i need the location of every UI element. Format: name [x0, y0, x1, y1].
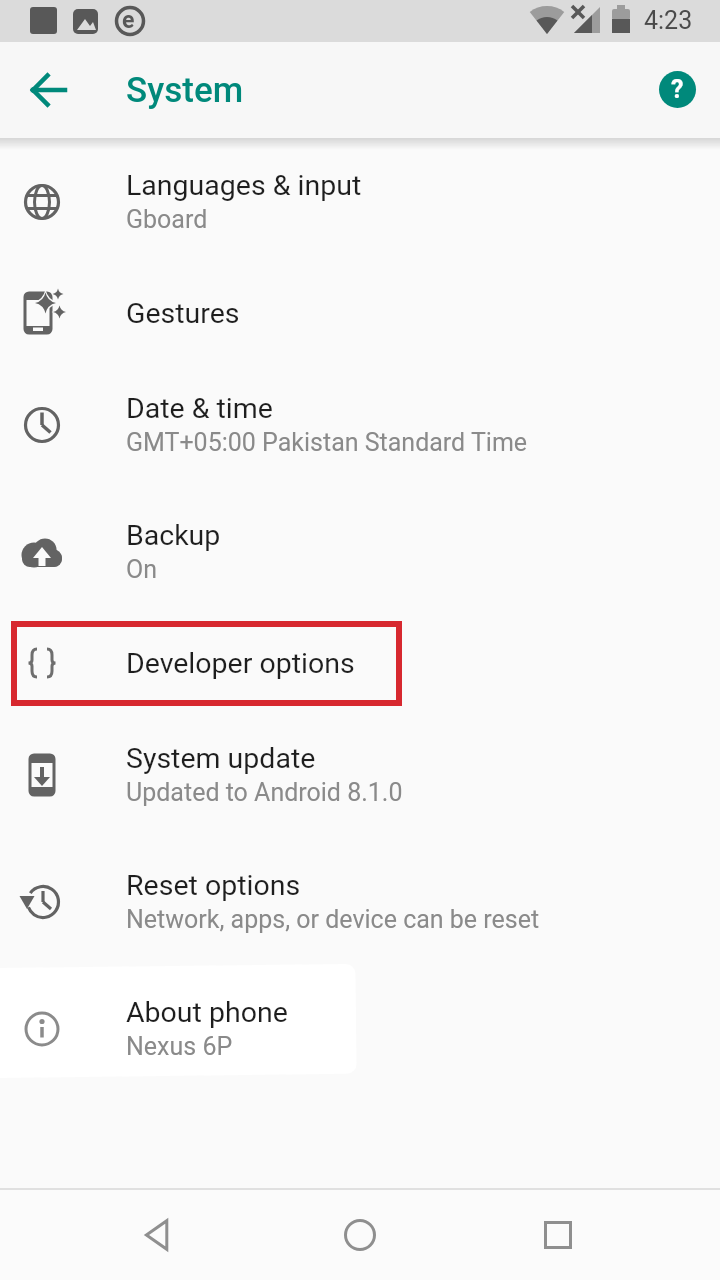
- staticText: Gestures: [126, 297, 240, 330]
- button[interactable]: Date & time: [0, 361, 720, 488]
- staticText: GMT+05:00 Pakistan Standard Time: [126, 428, 528, 457]
- button[interactable]: Gestures: [0, 265, 720, 361]
- staticText: Gboard: [126, 205, 208, 234]
- staticText: System: [126, 70, 244, 111]
- staticText: About phone: [126, 996, 288, 1029]
- button[interactable]: Reset options: [0, 838, 720, 965]
- button[interactable]: Developer options: [0, 615, 720, 711]
- staticText: On: [126, 555, 158, 584]
- staticText: Backup: [126, 519, 221, 552]
- button[interactable]: About phone: [0, 965, 720, 1092]
- staticText: ?: [671, 75, 684, 104]
- button[interactable]: [20, 61, 78, 119]
- button[interactable]: Backup: [0, 488, 720, 615]
- button[interactable]: [320, 1195, 400, 1275]
- staticText: Languages & input: [126, 169, 362, 202]
- staticText: 4:23: [644, 6, 693, 35]
- button[interactable]: ?: [653, 65, 701, 113]
- button[interactable]: System update: [0, 711, 720, 838]
- staticText: Reset options: [126, 869, 301, 902]
- staticText: Date & time: [126, 392, 273, 425]
- staticText: Developer options: [126, 647, 355, 680]
- button[interactable]: Languages & input: [0, 138, 720, 265]
- button[interactable]: [120, 1195, 200, 1275]
- staticText: Updated to Android 8.1.0: [126, 778, 403, 807]
- staticText: Network, apps, or device can be reset: [126, 905, 540, 934]
- staticText: System update: [126, 742, 316, 775]
- staticText: Nexus 6P: [126, 1032, 233, 1061]
- staticText: e: [122, 7, 135, 34]
- button[interactable]: [518, 1195, 598, 1275]
